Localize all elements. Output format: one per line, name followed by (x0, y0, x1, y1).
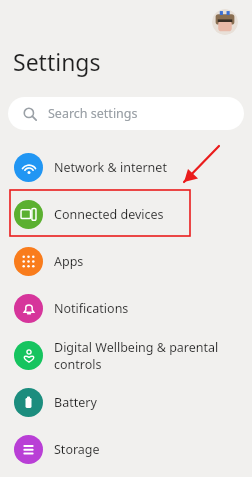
button[interactable]: Search settings (8, 97, 244, 130)
staticText: Storage (54, 441, 100, 458)
staticText: Network & internet (54, 159, 167, 176)
staticText: Apps (54, 253, 84, 270)
staticText: Battery (54, 394, 97, 411)
button[interactable]: Account (212, 9, 238, 35)
button[interactable]: Storage (0, 426, 252, 473)
staticText: Notifications (54, 300, 129, 317)
staticText: Connected devices (54, 206, 164, 223)
staticText: Search settings (48, 105, 138, 122)
button[interactable]: Battery (0, 379, 252, 426)
button[interactable]: Connected devices (0, 191, 252, 238)
staticText: Digital Wellbeing & parental controls (54, 339, 219, 372)
button[interactable]: Network & internet (0, 144, 252, 191)
staticText: Settings (13, 46, 101, 77)
button[interactable]: Notifications (0, 285, 252, 332)
button[interactable]: Digital Wellbeing & parental controls (0, 332, 252, 379)
button[interactable]: Apps (0, 238, 252, 285)
